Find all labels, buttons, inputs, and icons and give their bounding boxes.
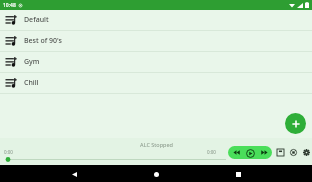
button[interactable]: Cast to device <box>275 147 286 158</box>
button[interactable]: Audio effects <box>288 147 299 158</box>
staticText: Gym <box>24 57 40 67</box>
staticText: 10:48 <box>3 2 16 9</box>
button[interactable]: Home <box>148 166 164 182</box>
button[interactable]: Settings <box>301 147 312 158</box>
button[interactable]: Add playlist <box>285 113 306 134</box>
staticText: 0:00 <box>4 149 13 155</box>
button[interactable]: Next <box>259 147 270 158</box>
staticText: Default <box>24 15 49 25</box>
button[interactable]: Default <box>0 10 312 31</box>
staticText: Chill <box>24 78 39 88</box>
button[interactable]: Gym <box>0 52 312 73</box>
staticText: 0:00 <box>207 149 216 155</box>
button[interactable]: Previous <box>231 147 242 158</box>
staticText: ALC Stopped <box>140 141 173 148</box>
button[interactable]: Recent apps <box>230 166 246 182</box>
button[interactable]: Best of 90's <box>0 31 312 52</box>
button[interactable]: Play <box>244 147 256 159</box>
button[interactable]: Back <box>66 166 82 182</box>
button[interactable]: Chill <box>0 73 312 94</box>
staticText: Best of 90's <box>24 36 62 46</box>
